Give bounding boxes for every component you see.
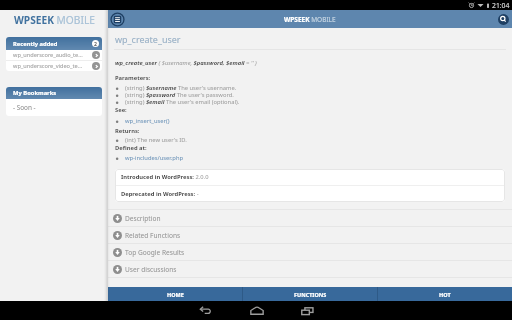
staticText: Description — [125, 214, 161, 223]
staticText: wp_insert_user() — [125, 117, 170, 125]
staticText: (string) $username The user's username. — [125, 84, 237, 92]
button[interactable]: Recently added — [6, 37, 102, 50]
staticText: WPSEEK MOBILE — [14, 13, 95, 27]
button[interactable]: FUNCTIONS — [243, 287, 377, 301]
staticText: Parameters: — [115, 74, 151, 82]
staticText: HOME — [167, 291, 184, 298]
staticText: Related Functions — [125, 231, 181, 240]
staticText: (int) The new user's ID. — [125, 136, 187, 144]
button[interactable]: HOME — [108, 287, 242, 301]
staticText: Defined at: — [115, 144, 147, 152]
staticText: Deprecated in WordPress: - — [121, 190, 199, 198]
staticText: (string) $password The user's password. — [125, 91, 234, 99]
staticText: Top Google Results — [125, 248, 185, 257]
staticText: 2 — [94, 40, 97, 47]
button[interactable]: Home — [231, 301, 282, 320]
button[interactable]: Back — [180, 301, 231, 320]
button[interactable]: Search — [497, 13, 510, 26]
staticText: HOT — [439, 291, 451, 298]
button[interactable]: Open navigation menu — [110, 12, 125, 27]
button[interactable]: Description — [108, 210, 512, 226]
button[interactable]: wp_underscore_video_te... — [6, 61, 102, 71]
staticText: - Soon - — [13, 103, 36, 112]
staticText: Returns: — [115, 127, 140, 135]
staticText: My Bookmarks — [13, 89, 57, 97]
staticText: wp_create_user — [115, 33, 181, 45]
button[interactable]: Recent apps — [282, 301, 333, 320]
staticText: Recently added — [13, 40, 58, 48]
button[interactable]: wp_underscore_audio_te... — [6, 50, 102, 60]
button[interactable]: User discussions — [108, 261, 512, 277]
button[interactable]: Related Functions — [108, 227, 512, 243]
staticText: wp_create_user ( $username, $password, $… — [115, 59, 257, 67]
staticText: wp_underscore_video_te... — [13, 62, 83, 70]
staticText: User discussions — [125, 265, 177, 274]
staticText: Introduced in WordPress: 2.0.0 — [121, 173, 209, 181]
button[interactable]: Top Google Results — [108, 244, 512, 260]
staticText: (string) $email The user's email (option… — [125, 98, 240, 106]
button[interactable]: HOT — [378, 287, 512, 301]
staticText: wp_underscore_audio_te... — [13, 51, 83, 59]
staticText: FUNCTIONS — [294, 291, 327, 298]
staticText: WPSEEK MOBILE — [284, 15, 336, 24]
button[interactable]: My Bookmarks — [6, 87, 102, 99]
staticText: 21:04 — [492, 1, 510, 10]
staticText: See: — [115, 106, 127, 114]
staticText: wp-includes/user.php — [125, 154, 184, 162]
